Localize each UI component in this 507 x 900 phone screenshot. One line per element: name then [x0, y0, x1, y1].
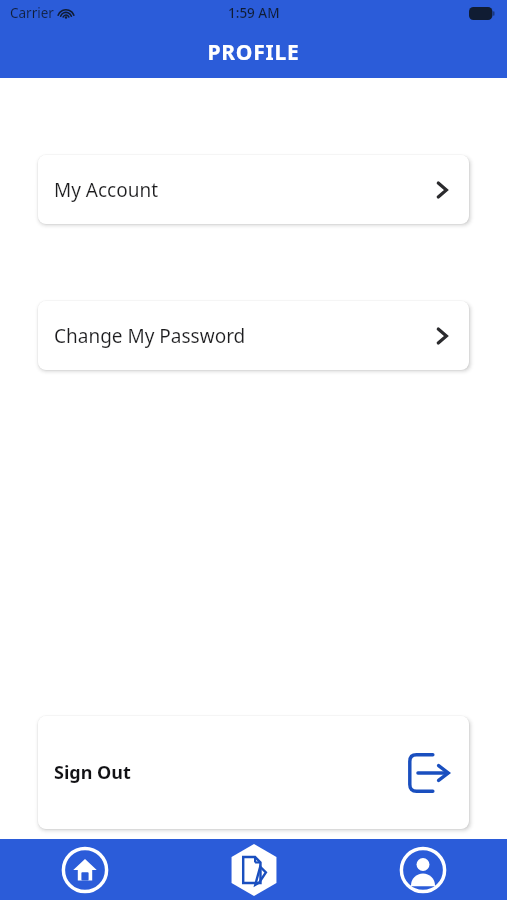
staticText: 1:59 AM: [228, 4, 280, 22]
button[interactable]: Home: [0, 839, 169, 900]
staticText: Sign Out: [54, 760, 131, 785]
other: Sign out: [405, 749, 453, 797]
button[interactable]: Sign Out: [38, 716, 469, 829]
button[interactable]: Change My Password: [38, 301, 469, 370]
button[interactable]: My Account: [38, 155, 469, 224]
staticText: Change My Password: [54, 323, 246, 349]
staticText: My Account: [54, 177, 159, 203]
button[interactable]: Documents: [169, 839, 338, 900]
staticText: PROFILE: [207, 38, 300, 67]
staticText: Carrier: [10, 4, 54, 22]
button[interactable]: Profile: [338, 839, 507, 900]
